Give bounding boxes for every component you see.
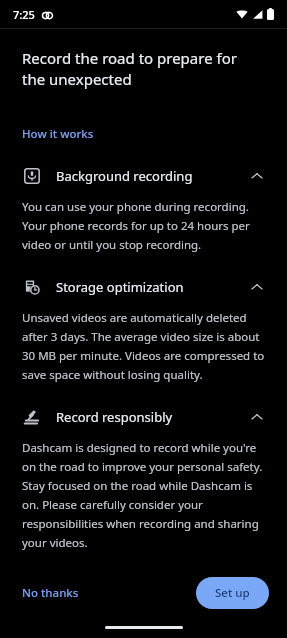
staticText: Background recording [56, 167, 249, 185]
other: Collapse Record responsibly [249, 409, 265, 425]
staticText: Set up [215, 585, 250, 601]
button[interactable]: Storage optimization [22, 274, 265, 300]
other: Collapse Storage optimization [249, 279, 265, 295]
button[interactable]: Record responsibly [22, 404, 265, 430]
staticText: Unsaved videos are automatically deleted… [22, 310, 265, 382]
staticText: Storage optimization [56, 278, 249, 296]
other: Collapse Background recording [249, 168, 265, 184]
button[interactable]: No thanks [18, 579, 83, 607]
staticText: 7:25 [13, 7, 35, 22]
button[interactable]: How it works [22, 126, 94, 142]
button[interactable]: Background recording [22, 163, 265, 189]
staticText: How it works [22, 126, 94, 142]
staticText: Dashcam is designed to record while you'… [22, 440, 265, 550]
staticText: Record the road to prepare for the unexp… [22, 48, 248, 90]
staticText: You can use your phone during recording.… [22, 199, 265, 252]
staticText: No thanks [22, 585, 79, 601]
button[interactable]: Set up [196, 577, 269, 609]
staticText: Record responsibly [56, 408, 249, 426]
